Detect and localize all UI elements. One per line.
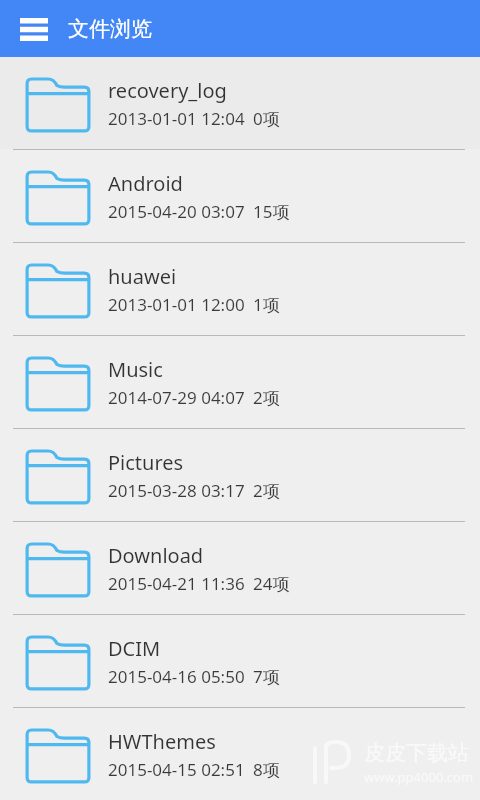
staticText: 2015-04-20 03:07 [108,200,245,223]
button[interactable]: HWThemes [0,708,480,800]
button[interactable]: Pictures [0,429,480,521]
staticText: 1项 [253,293,280,316]
staticText: HWThemes [108,728,216,755]
staticText: 0项 [253,107,280,130]
staticText: DCIM [108,635,161,662]
staticText: 2015-03-28 03:17 [108,479,245,502]
staticText: 皮皮下载站 [364,740,469,766]
staticText: www.pp4000.com [364,768,474,786]
staticText: 文件浏览 [68,16,152,42]
staticText: 2项 [253,479,280,502]
staticText: 2015-04-21 11:36 [108,572,245,595]
staticText: Pictures [108,449,184,476]
staticText: 2014-07-29 04:07 [108,386,245,409]
staticText: recovery_log [108,77,227,104]
button[interactable]: Menu [8,3,60,55]
staticText: 2项 [253,386,280,409]
staticText: 7项 [253,665,280,688]
button[interactable]: recovery_log [0,57,480,149]
staticText: huawei [108,263,177,290]
staticText: 2013-01-01 12:00 [108,293,245,316]
staticText: Android [108,170,183,197]
staticText: 2015-04-16 05:50 [108,665,245,688]
button[interactable]: huawei [0,243,480,335]
staticText: 2013-01-01 12:04 [108,107,245,130]
staticText: 8项 [253,758,280,781]
staticText: 15项 [253,200,290,223]
staticText: Download [108,542,204,569]
button[interactable]: Android [0,150,480,242]
staticText: 2015-04-15 02:51 [108,758,245,781]
button[interactable]: Music [0,336,480,428]
staticText: 24项 [253,572,290,595]
button[interactable]: DCIM [0,615,480,707]
button[interactable]: Download [0,522,480,614]
staticText: Music [108,356,163,383]
